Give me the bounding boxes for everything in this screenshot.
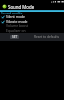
button[interactable]: Vibrate mode (0, 19, 64, 24)
button[interactable]: Equalizer on (0, 28, 64, 33)
staticText: Volume boost (6, 23, 28, 28)
button[interactable]: App icon (0, 3, 64, 10)
staticText: Sound profile (1, 11, 23, 14)
staticText: Equalizer on (6, 28, 26, 33)
button[interactable]: Reset to defaults (34, 35, 60, 39)
staticText: Vibrate mode (6, 19, 28, 24)
button[interactable]: SET (10, 35, 19, 39)
other: App icon (2, 4, 7, 9)
button[interactable]: Silent mode (0, 14, 64, 19)
staticText: Silent mode (6, 14, 25, 19)
button[interactable]: Sound profile (0, 11, 64, 14)
staticText: Reset to defaults (34, 35, 60, 39)
staticText: SET (12, 35, 18, 39)
staticText: Sound Mode (8, 4, 35, 10)
button[interactable]: Volume boost (0, 23, 64, 28)
